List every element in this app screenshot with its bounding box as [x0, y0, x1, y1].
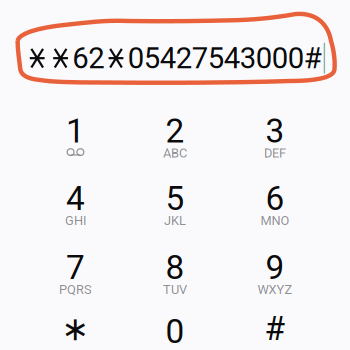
button[interactable]: 2	[125, 118, 224, 182]
staticText: WXYZ	[257, 282, 292, 297]
button[interactable]: #	[225, 319, 324, 350]
staticText: 3	[265, 112, 284, 151]
button[interactable]: 5	[125, 185, 224, 249]
button[interactable]: 4	[26, 185, 125, 249]
staticText: 9	[265, 248, 284, 287]
staticText: 6	[265, 179, 284, 218]
staticText: ABC	[163, 146, 187, 161]
staticText: JKL	[164, 213, 186, 228]
staticText: 4	[66, 179, 85, 218]
staticText: 5	[165, 179, 184, 218]
button[interactable]: 1	[26, 118, 125, 182]
staticText: 1	[66, 112, 85, 151]
staticText: TUV	[163, 282, 187, 297]
staticText: 2	[165, 112, 184, 151]
staticText: 0	[165, 312, 184, 350]
staticText: 05427543000#	[128, 41, 322, 75]
button[interactable]: 7	[26, 254, 125, 318]
staticText: #	[264, 309, 285, 348]
button[interactable]: 9	[225, 254, 324, 318]
staticText: MNO	[260, 213, 289, 228]
staticText: 8	[165, 248, 184, 287]
staticText: DEF	[264, 146, 286, 161]
button[interactable]: 6	[225, 185, 324, 249]
button[interactable]: 8	[125, 254, 224, 318]
staticText: 62	[72, 41, 104, 75]
staticText: PQRS	[59, 282, 92, 297]
button[interactable]: ∗	[26, 319, 125, 350]
staticText: GHI	[65, 213, 86, 228]
staticText: ∗	[61, 309, 89, 348]
button[interactable]: 0	[125, 319, 224, 350]
button[interactable]: 3	[225, 118, 324, 182]
staticText: 7	[66, 248, 85, 287]
